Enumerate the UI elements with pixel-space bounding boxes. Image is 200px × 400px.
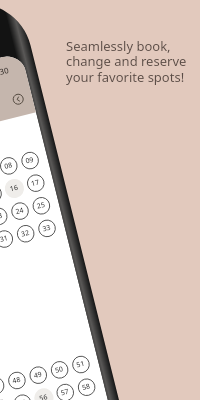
button[interactable]: Back bbox=[13, 94, 24, 105]
staticText: Seamlessly book, change and reserve your… bbox=[66, 37, 187, 86]
